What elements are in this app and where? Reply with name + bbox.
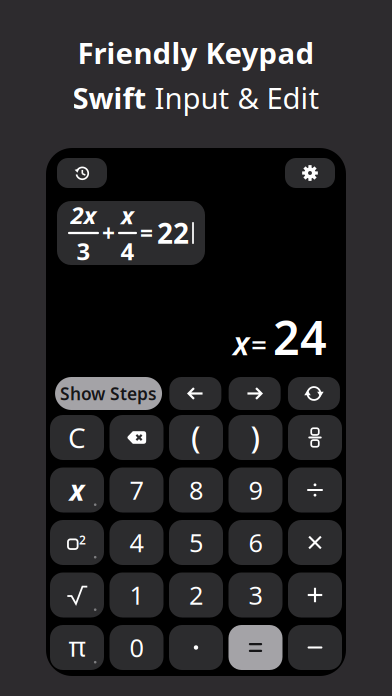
staticText: 4 — [129, 526, 143, 559]
button[interactable]: Previous — [169, 377, 221, 410]
staticText: 2 — [189, 578, 203, 612]
button[interactable]: 2 — [169, 572, 223, 617]
button[interactable]: Fraction — [288, 415, 342, 460]
staticText: Input & Edit — [146, 78, 319, 117]
button[interactable]: Next — [229, 377, 281, 410]
button[interactable]: Square root — [50, 572, 104, 617]
button[interactable]: ) — [228, 415, 282, 460]
button[interactable]: ( — [169, 415, 223, 460]
button[interactable]: History — [57, 158, 107, 188]
button[interactable]: Settings — [285, 158, 335, 188]
staticText: 2 — [79, 532, 86, 548]
button[interactable]: Square — [50, 520, 104, 565]
staticText: Friendly Keypad — [77, 33, 314, 72]
button[interactable]: Multiply — [288, 520, 342, 565]
staticText: 4 — [120, 235, 134, 267]
staticText: 6 — [248, 526, 262, 559]
staticText: 2x — [70, 199, 96, 231]
staticText: = — [140, 218, 153, 248]
staticText: = — [251, 326, 267, 363]
staticText: ( — [191, 416, 201, 457]
staticText: 22 — [157, 214, 189, 252]
button[interactable]: x — [50, 467, 104, 512]
button[interactable]: 4 — [109, 520, 163, 565]
button[interactable]: Reset — [288, 377, 340, 410]
button[interactable]: Decimal point — [169, 625, 223, 670]
button[interactable]: 6 — [228, 520, 282, 565]
staticText: Show Steps — [60, 382, 157, 405]
staticText: 3 — [248, 578, 262, 612]
button[interactable]: C — [50, 415, 104, 460]
staticText: ) — [250, 416, 260, 457]
button[interactable]: Plus — [288, 572, 342, 617]
staticText: 24 — [273, 306, 327, 368]
staticText: 8 — [189, 473, 203, 507]
staticText: + — [102, 218, 115, 248]
button[interactable]: Minus — [288, 625, 342, 670]
button[interactable]: 0 — [109, 625, 163, 670]
staticText: Swift — [72, 78, 146, 117]
button[interactable]: Delete — [109, 415, 163, 460]
button[interactable]: Equals — [228, 625, 282, 670]
staticText: 1 — [129, 578, 143, 612]
button[interactable]: 7 — [109, 467, 163, 512]
button[interactable]: Divide — [288, 467, 342, 512]
button[interactable]: 5 — [169, 520, 223, 565]
button[interactable]: 1 — [109, 572, 163, 617]
staticText: x — [233, 321, 249, 364]
staticText: C — [68, 419, 86, 456]
button[interactable]: 9 — [228, 467, 282, 512]
staticText: 9 — [248, 473, 262, 507]
staticText: 0 — [129, 631, 143, 664]
button[interactable]: Show Steps — [55, 377, 162, 410]
button[interactable]: 3 — [228, 572, 282, 617]
staticText: π — [68, 629, 85, 664]
staticText: 3 — [76, 235, 90, 267]
button[interactable]: 8 — [169, 467, 223, 512]
button[interactable]: π — [50, 625, 104, 670]
staticText: x — [121, 199, 134, 231]
staticText: 5 — [189, 526, 203, 559]
staticText: 7 — [129, 473, 143, 507]
staticText: x — [69, 471, 84, 509]
